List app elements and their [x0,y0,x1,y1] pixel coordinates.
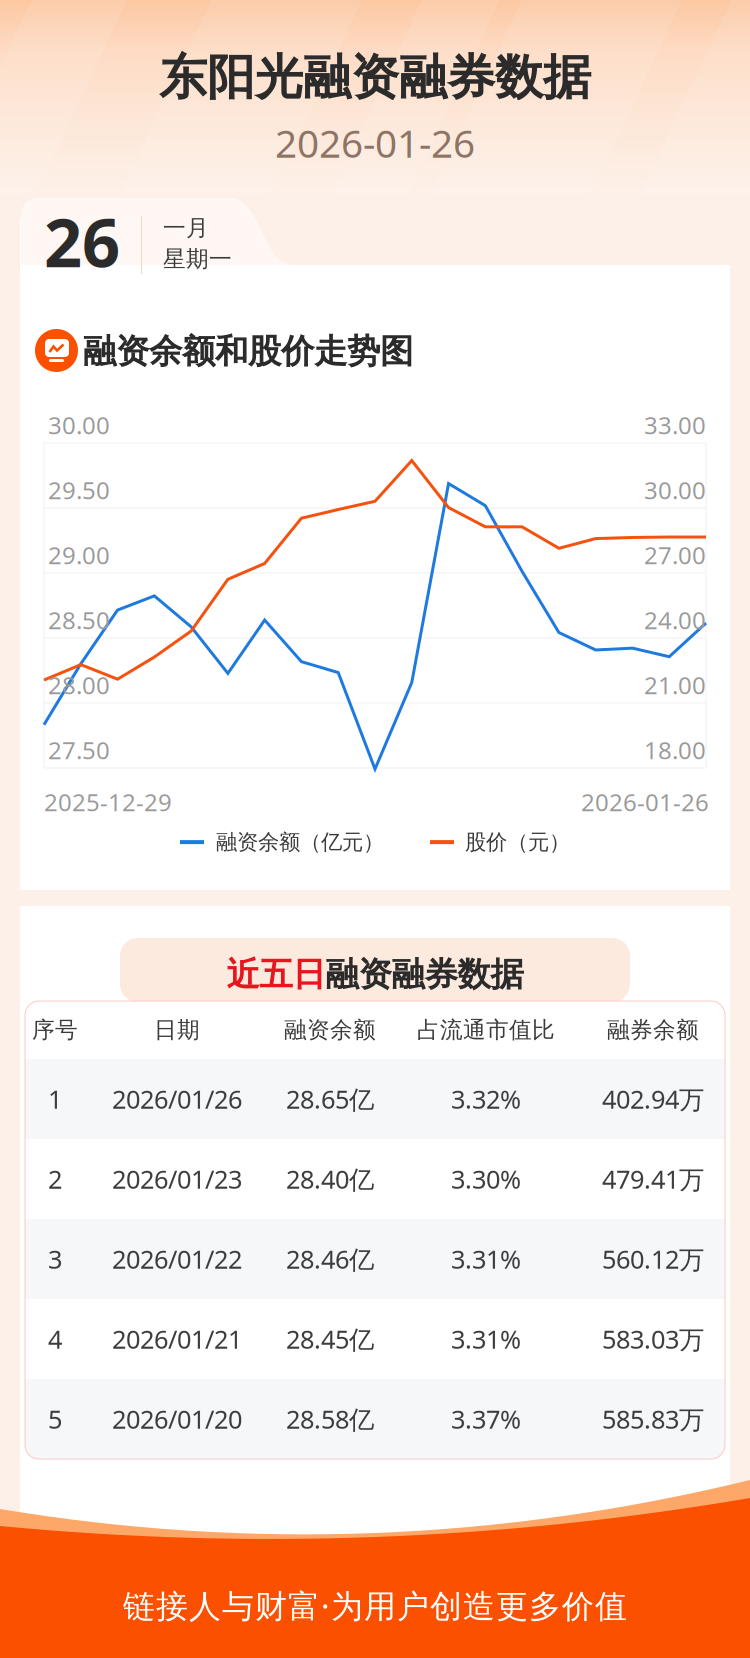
staticText: 1 [48,1082,62,1116]
staticText: 3.32% [451,1082,521,1116]
staticText: 479.41万 [602,1162,704,1196]
staticText: 3 [48,1242,62,1276]
staticText: 402.94万 [602,1082,704,1116]
staticText: 2026/01/23 [112,1162,242,1196]
staticText: 24.00 [644,604,706,636]
staticText: 2026/01/20 [112,1402,242,1436]
staticText: 星期一 [163,245,232,273]
staticText: 股价（元） [465,829,570,855]
staticText: 28.40亿 [286,1162,374,1196]
staticText: 2026/01/22 [112,1242,242,1276]
staticText: 28.45亿 [286,1322,374,1356]
staticText: 583.03万 [602,1322,704,1356]
staticText: 28.46亿 [286,1242,374,1276]
staticText: 2025-12-29 [44,786,172,818]
staticText: 2026-01-26 [581,786,709,818]
staticText: 27.50 [48,734,110,766]
staticText: 2026-01-26 [275,117,475,168]
staticText: 链接人与财富·为用户创造更多价值 [123,1584,627,1626]
staticText: 18.00 [644,734,706,766]
staticText: 26 [44,197,120,285]
staticText: 560.12万 [602,1242,704,1276]
staticText: 东阳光融资融券数据 [159,48,591,107]
staticText: 融资余额和股价走势图 [83,331,413,372]
staticText: 一月 [163,214,209,242]
staticText: 585.83万 [602,1402,704,1436]
staticText: 30.00 [644,474,706,506]
staticText: 21.00 [644,669,706,701]
staticText: 2 [48,1162,62,1196]
staticText: 融资融券数据 [325,954,523,995]
staticText: 占流通市值比 [417,1016,555,1044]
staticText: 29.00 [48,539,110,571]
staticText: 近五日 [226,954,325,995]
staticText: 33.00 [644,409,706,441]
staticText: 3.37% [451,1402,521,1436]
staticText: 2026/01/21 [112,1322,242,1356]
staticText: 4 [48,1322,62,1356]
staticText: 3.31% [451,1322,521,1356]
staticText: 3.31% [451,1242,521,1276]
staticText: 2026/01/26 [112,1082,242,1116]
staticText: 28.50 [48,604,110,636]
staticText: 28.00 [48,669,110,701]
staticText: 日期 [154,1016,200,1044]
staticText: 序号 [32,1016,78,1044]
staticText: 融券余额 [607,1016,699,1044]
staticText: 3.30% [451,1162,521,1196]
staticText: 29.50 [48,474,110,506]
staticText: 30.00 [48,409,110,441]
staticText: 28.65亿 [286,1082,374,1116]
staticText: 28.58亿 [286,1402,374,1436]
staticText: 融资余额（亿元） [216,829,384,855]
staticText: 5 [48,1402,62,1436]
staticText: 融资余额 [284,1016,376,1044]
staticText: 27.00 [644,539,706,571]
